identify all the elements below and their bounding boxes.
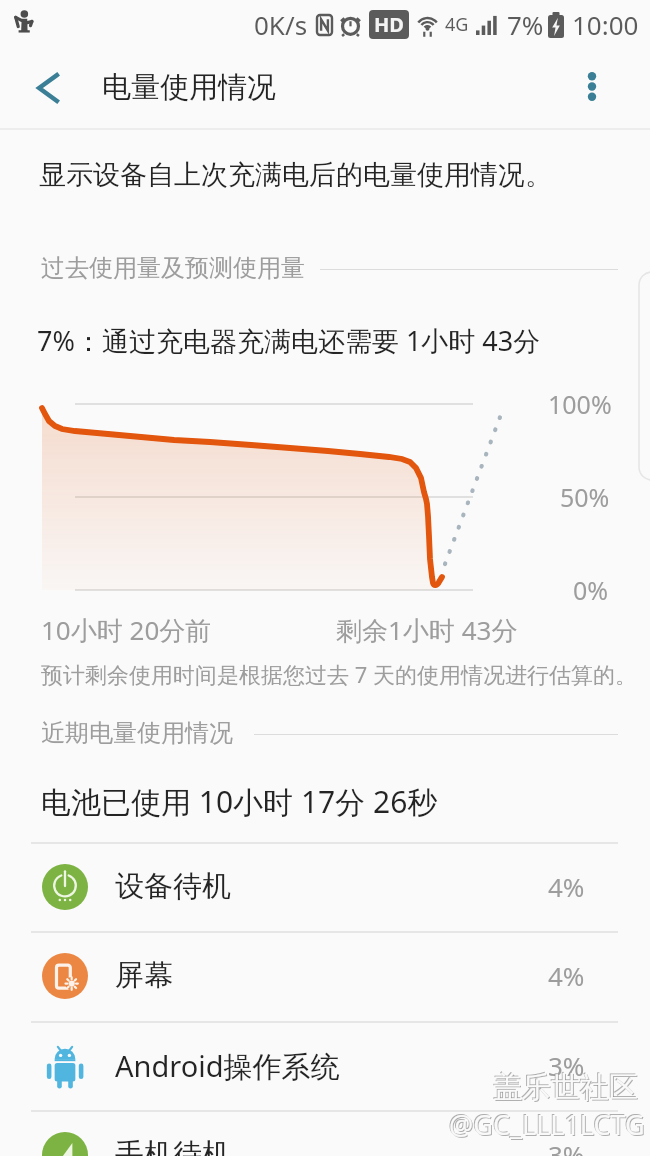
staticText: 显示设备自上次充满电后的电量使用情况。: [39, 158, 552, 192]
staticText: 0K/s: [254, 7, 308, 42]
staticText: 0%: [573, 573, 609, 607]
staticText: 100%: [548, 387, 612, 421]
staticText: 10小时 20分前: [41, 612, 212, 648]
staticText: 过去使用量及预测使用量: [41, 253, 305, 283]
staticText: 电池已使用 10小时 17分 26秒: [41, 781, 438, 822]
staticText: 预计剩余使用时间是根据您过去 7 天的使用情况进行估算的。: [41, 659, 638, 689]
staticText: 盖乐世社区: [494, 1070, 639, 1107]
staticText: 10:00: [572, 7, 639, 42]
staticText: 设备待机: [115, 868, 231, 905]
button[interactable]: More options: [568, 62, 616, 110]
staticText: 3%: [548, 1048, 585, 1083]
staticText: 4G: [445, 12, 469, 37]
staticText: @GC_LLL1LCTG: [448, 1105, 644, 1142]
staticText: 7%：通过充电器充满电还需要 1小时 43分: [37, 322, 541, 359]
staticText: @GC_LLL1LCTG: [450, 1107, 646, 1144]
staticText: 50%: [560, 480, 610, 514]
button[interactable]: Android操作系统: [0, 1021, 650, 1110]
staticText: 手机待机: [115, 1136, 231, 1156]
staticText: 4%: [548, 869, 585, 904]
button[interactable]: 屏幕: [0, 931, 650, 1020]
staticText: HD: [374, 11, 404, 38]
staticText: 近期电量使用情况: [41, 718, 233, 748]
staticText: 剩余1小时 43分: [336, 612, 518, 648]
staticText: 3%: [548, 1137, 585, 1156]
staticText: 7%: [507, 7, 544, 42]
staticText: 屏幕: [115, 957, 173, 994]
button[interactable]: 设备待机: [0, 842, 650, 931]
staticText: 4%: [548, 958, 585, 993]
button[interactable]: 手机待机: [0, 1110, 650, 1156]
staticText: 盖乐世社区: [493, 1069, 638, 1106]
staticText: 电量使用情况: [102, 69, 276, 106]
staticText: 盖乐世社区: [492, 1068, 637, 1105]
staticText: @GC_LLL1LCTG: [449, 1106, 645, 1143]
button[interactable]: Back: [20, 60, 76, 116]
staticText: Android操作系统: [115, 1046, 340, 1086]
